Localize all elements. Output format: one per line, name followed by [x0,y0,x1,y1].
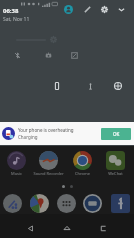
button[interactable]: Battery saver [49,78,65,94]
button[interactable]: Facebook [110,193,130,213]
button[interactable]: Auto brightness [48,34,58,44]
button[interactable]: Your phone is overheating [0,122,134,145]
staticText: Your phone is overheating [18,127,74,133]
staticText: WeChat [108,171,123,176]
staticText: Charging [18,134,38,140]
button[interactable]: Do not disturb [66,47,82,63]
staticText: 06:38 [3,7,19,15]
button[interactable]: Bluetooth [9,47,25,63]
button[interactable]: OK [101,128,131,140]
button[interactable]: Collapse [114,2,128,16]
button[interactable]: Chrome [66,151,98,176]
button[interactable]: Maps [29,193,49,213]
staticText: Music [11,171,22,176]
button[interactable]: Account [61,2,75,16]
staticText: OK [113,131,120,137]
staticText: Chrome [75,171,90,176]
button[interactable]: Music [0,151,32,176]
button[interactable]: Home [56,217,78,238]
button[interactable]: Flashlight [40,47,56,63]
button[interactable]: All apps [56,193,76,213]
button[interactable]: WeChat [99,151,131,176]
staticText: Sound Recorder [33,171,64,176]
button[interactable]: Sound Recorder [32,151,64,176]
button[interactable]: Cast [82,78,98,94]
button[interactable]: Camera [82,193,102,213]
button[interactable]: Settings [97,2,111,16]
button[interactable]: Back [19,217,41,238]
button[interactable]: Mobile data [110,78,126,94]
button[interactable]: Edit [80,2,94,16]
button[interactable]: Weather [2,193,22,213]
staticText: Sat, Nov 11 [3,16,30,23]
button[interactable]: Recents [92,217,114,238]
